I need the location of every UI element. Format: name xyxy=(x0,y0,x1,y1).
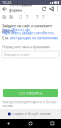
button[interactable]: More options xyxy=(55,5,60,13)
staticText: ? xyxy=(36,13,38,21)
staticText: Зайдите на сайт и заполните анкету xyxy=(2,23,52,34)
staticText: 10:24 xyxy=(2,0,11,5)
button[interactable]: https://forms.gle xyxy=(2,27,30,30)
staticText: docs.google.com xyxy=(9,12,33,16)
staticText: 1.6 Отправка формы xyxy=(9,2,32,12)
button[interactable]: Recent apps xyxy=(45,119,59,128)
staticText: Введите ответ xyxy=(4,52,30,57)
button[interactable]: https://docs.google.com/forms xyxy=(2,30,54,33)
staticText: См. xyxy=(2,35,9,40)
button[interactable]: Home xyxy=(23,119,37,128)
button[interactable]: Reload page xyxy=(41,5,48,13)
button[interactable]: инструкцию по заполнению xyxy=(10,35,58,40)
staticText: ? xyxy=(42,13,44,21)
staticText: Создано в Google Формах xyxy=(12,112,50,116)
staticText: ОТПРАВИТЬ xyxy=(19,90,42,96)
button[interactable]: ОТПРАВИТЬ xyxy=(3,89,58,97)
staticText: Никогда не вводите пароли в Google Форма… xyxy=(2,100,57,108)
staticText: https://forms.gle xyxy=(2,27,30,32)
button[interactable]: Share xyxy=(48,5,55,13)
button[interactable]: Back xyxy=(1,119,15,128)
staticText: https://docs.google.com/forms xyxy=(2,30,54,35)
button[interactable]: Back xyxy=(1,5,9,13)
staticText: Напишите имя и фамилию xyxy=(2,44,50,49)
staticText: инструкцию по заполнению xyxy=(10,35,58,40)
staticText: ? xyxy=(26,13,28,21)
